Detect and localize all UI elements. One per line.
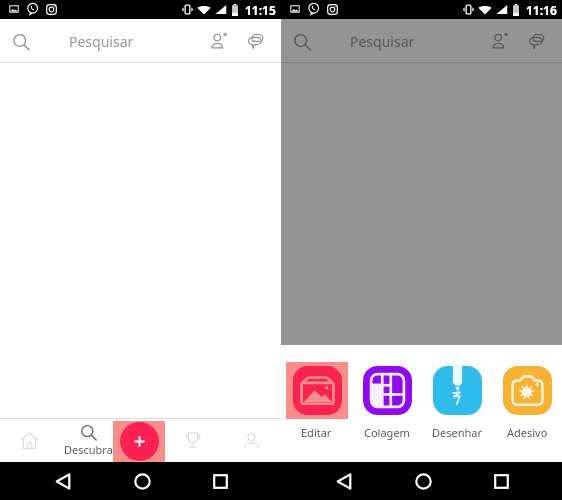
button[interactable]: Descubra xyxy=(61,418,116,462)
button[interactable]: Back xyxy=(305,462,383,500)
button[interactable]: Back xyxy=(24,462,102,500)
button[interactable]: Profile xyxy=(229,418,274,462)
button[interactable]: Search xyxy=(281,19,323,63)
button[interactable]: Home xyxy=(7,418,52,462)
button[interactable]: Add friend xyxy=(195,19,237,63)
button[interactable]: Adesivo xyxy=(492,362,562,440)
button[interactable]: Search xyxy=(0,19,42,63)
staticText: Pesquisar xyxy=(69,32,134,51)
button[interactable]: Messages xyxy=(237,19,275,63)
staticText: Adesivo xyxy=(507,425,548,440)
button[interactable]: Colagem xyxy=(352,362,422,440)
button[interactable]: Create xyxy=(113,421,165,462)
staticText: Editar xyxy=(301,425,332,440)
staticText: Desenhar xyxy=(432,425,483,440)
button[interactable]: Messages xyxy=(518,19,556,63)
staticText: 11:16 xyxy=(526,2,557,18)
button[interactable]: Recents xyxy=(462,462,540,500)
staticText: Descubra xyxy=(64,442,113,457)
button[interactable]: Recents xyxy=(181,462,259,500)
button[interactable]: Home xyxy=(103,462,181,500)
button[interactable]: Desenhar xyxy=(422,362,492,440)
staticText: Colagem xyxy=(364,425,410,440)
staticText: 11:15 xyxy=(245,2,276,18)
button[interactable]: Trophy xyxy=(170,418,215,462)
button[interactable]: Add friend xyxy=(476,19,518,63)
button[interactable]: Home xyxy=(384,462,462,500)
button[interactable]: Editar xyxy=(281,362,352,440)
staticText: Pesquisar xyxy=(350,32,415,51)
